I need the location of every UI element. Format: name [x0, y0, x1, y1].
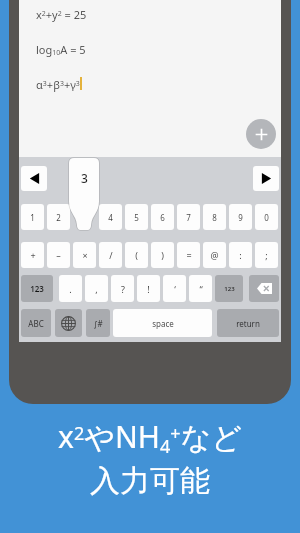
staticText: 8 [212, 212, 217, 223]
button[interactable]: ; [255, 242, 278, 268]
button[interactable]: / [99, 242, 122, 268]
button[interactable]: Move cursor right [253, 166, 279, 191]
button[interactable]: . [59, 275, 82, 302]
button[interactable]: Add new expression [246, 119, 276, 149]
button[interactable]: 7 [177, 204, 200, 230]
staticText: ? [121, 283, 125, 295]
button[interactable]: 123 [215, 275, 243, 302]
button[interactable]: ( [125, 242, 148, 268]
staticText: 2 [56, 212, 61, 223]
staticText: . [69, 283, 72, 295]
button[interactable]: return [217, 309, 279, 337]
staticText: ! [147, 283, 150, 295]
staticText: x2やNH4+など [58, 416, 242, 458]
staticText: x2+y2 = 25 [36, 7, 87, 22]
staticText: = [186, 249, 192, 261]
button[interactable]: ! [137, 275, 160, 302]
staticText: log10A = 5 [36, 42, 86, 57]
staticText: , [95, 283, 98, 295]
button[interactable]: 5 [125, 204, 148, 230]
staticText: 123 [30, 283, 44, 294]
staticText: ( [135, 249, 138, 261]
staticText: × [82, 249, 88, 261]
button[interactable]: Change keyboard language [55, 309, 82, 337]
staticText: 7 [186, 212, 191, 223]
staticText: 1 [30, 212, 35, 223]
button[interactable]: 3 [69, 158, 99, 230]
staticText: 4 [108, 212, 113, 223]
staticText: α3+β3+γ3 [36, 77, 80, 92]
button[interactable]: ∫# [86, 309, 110, 337]
staticText: 6 [160, 212, 165, 223]
button[interactable]: ) [151, 242, 174, 268]
button[interactable]: ‘ [163, 275, 186, 302]
staticText: space [152, 318, 174, 329]
staticText: ABC [28, 318, 44, 329]
staticText: ∫# [93, 318, 103, 329]
button[interactable]: , [85, 275, 108, 302]
staticText: : [239, 249, 242, 261]
staticText: – [56, 249, 61, 261]
button[interactable]: 2 [47, 204, 70, 230]
button[interactable]: 0 [255, 204, 278, 230]
button[interactable]: ABC [21, 309, 51, 337]
staticText: ‘ [174, 283, 176, 295]
button[interactable]: : [229, 242, 252, 268]
button[interactable]: – [47, 242, 70, 268]
staticText: 0 [264, 212, 269, 223]
staticText: ) [161, 249, 164, 261]
button[interactable]: = [177, 242, 200, 268]
button[interactable]: 6 [151, 204, 174, 230]
button[interactable]: 8 [203, 204, 226, 230]
staticText: return [236, 318, 260, 329]
button[interactable]: 9 [229, 204, 252, 230]
button[interactable]: + [21, 242, 44, 268]
staticText: / [109, 249, 113, 261]
button[interactable]: 1 [21, 204, 44, 230]
staticText: @ [210, 249, 219, 261]
button[interactable]: space [113, 309, 212, 337]
staticText: “ [199, 283, 203, 295]
staticText: 123 [224, 285, 235, 293]
staticText: 3 [81, 170, 88, 186]
button[interactable]: 123 [21, 275, 53, 302]
button[interactable]: @ [203, 242, 226, 268]
staticText: 9 [238, 212, 243, 223]
staticText: 入力可能 [90, 462, 210, 500]
button[interactable]: Delete [249, 275, 279, 302]
staticText: + [30, 249, 36, 261]
button[interactable]: “ [189, 275, 212, 302]
staticText: 5 [134, 212, 139, 223]
button[interactable]: Move cursor left [21, 166, 47, 191]
staticText: ; [265, 249, 268, 261]
button[interactable]: × [73, 242, 96, 268]
button[interactable]: ? [111, 275, 134, 302]
button[interactable]: 4 [99, 204, 122, 230]
